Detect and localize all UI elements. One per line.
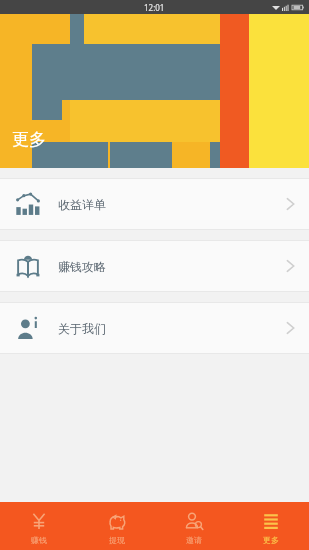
- button[interactable]: 提现: [78, 502, 155, 550]
- button[interactable]: 关于我们: [0, 303, 309, 353]
- staticText: 更多: [263, 535, 279, 545]
- staticText: 收益详单: [58, 197, 106, 212]
- staticText: 赚钱: [31, 535, 47, 545]
- button[interactable]: 赚钱: [0, 502, 78, 550]
- staticText: 12:01: [144, 2, 165, 13]
- staticText: 赚钱攻略: [58, 259, 106, 274]
- staticText: 邀请: [186, 535, 202, 545]
- button[interactable]: 更多: [232, 502, 309, 550]
- button[interactable]: 赚钱攻略: [0, 241, 309, 291]
- staticText: 提现: [109, 535, 125, 545]
- button[interactable]: 收益详单: [0, 179, 309, 229]
- staticText: 更多: [12, 129, 46, 150]
- staticText: 关于我们: [58, 321, 106, 336]
- button[interactable]: 邀请: [155, 502, 232, 550]
